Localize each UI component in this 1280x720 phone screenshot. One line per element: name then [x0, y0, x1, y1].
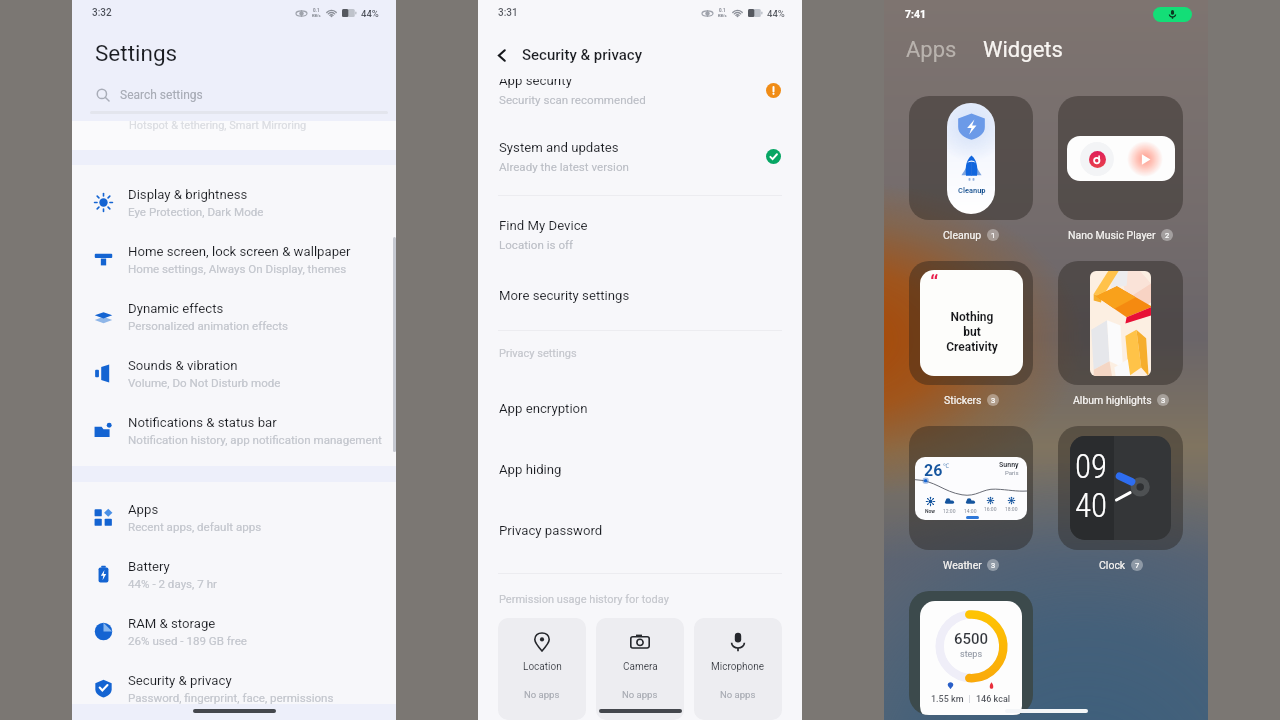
staticText: App hiding [499, 462, 562, 477]
button[interactable]: Search settings [96, 88, 396, 102]
staticText: Sounds & vibration [128, 358, 238, 373]
staticText: 2 [1165, 231, 1170, 240]
staticText: “ [930, 271, 939, 296]
staticText: Dynamic effects [128, 301, 224, 316]
button[interactable]: Microphone [694, 618, 782, 720]
button[interactable]: “ [909, 261, 1033, 385]
staticText: 3:31 [498, 7, 518, 19]
button[interactable]: Find My Device [478, 204, 802, 265]
staticText: Volume, Do Not Disturb mode [128, 376, 281, 390]
staticText: Privacy settings [499, 347, 577, 360]
staticText: Microphone [711, 661, 765, 673]
button[interactable]: Dynamic effects [72, 288, 396, 345]
staticText: 3 [991, 396, 996, 405]
staticText: 0.1 [313, 8, 320, 13]
staticText: Security & privacy [522, 46, 642, 64]
staticText: 44% - 2 days, 7 hr [128, 577, 217, 591]
staticText: Privacy password [499, 523, 603, 538]
button[interactable]: Privacy password [478, 500, 802, 561]
staticText: Security scan recommended [499, 93, 646, 107]
staticText: RAM & storage [128, 616, 216, 631]
staticText: 3 [1161, 396, 1166, 405]
button[interactable]: Battery [72, 546, 396, 603]
staticText: Already the latest version [499, 160, 629, 174]
button[interactable]: Apps [906, 37, 957, 63]
staticText: KB/s [718, 13, 727, 18]
button[interactable]: Widgets [983, 37, 1063, 63]
staticText: Camera [623, 661, 658, 673]
staticText: | [964, 694, 976, 705]
staticText: 44% [767, 8, 785, 19]
staticText: 1.55 km [931, 694, 964, 705]
staticText: Notification history, app notification m… [128, 433, 382, 447]
staticText: Cleanup [943, 229, 982, 241]
staticText: 146 kcal [976, 694, 1011, 705]
staticText: Search settings [120, 88, 203, 102]
staticText: Notifications & status bar [128, 415, 277, 430]
staticText: Home settings, Always On Display, themes [128, 262, 347, 276]
staticText: Nothing but Creativity [946, 310, 998, 354]
staticText: No apps [720, 689, 756, 700]
staticText: steps [960, 649, 983, 660]
staticText: Battery [128, 559, 170, 574]
staticText: More security settings [499, 288, 630, 303]
button[interactable]: Back [478, 38, 802, 72]
button[interactable]: RAM & storage [72, 603, 396, 660]
staticText: 16:00 [984, 506, 997, 512]
button[interactable]: Display & brightness [72, 174, 396, 231]
staticText: KB/s [312, 13, 321, 18]
staticText: Album highlights [1073, 394, 1152, 406]
staticText: Location [523, 661, 562, 673]
button[interactable] [1058, 261, 1183, 385]
staticText: Personalized animation effects [128, 319, 289, 333]
staticText: Recent apps, default apps [128, 520, 262, 534]
staticText: Settings [95, 40, 178, 66]
staticText: 1 [991, 231, 996, 240]
button[interactable] [1058, 96, 1183, 220]
staticText: Nano Music Player [1068, 229, 1156, 241]
staticText: Sunny [999, 461, 1019, 469]
staticText: 3 [991, 561, 996, 570]
button[interactable]: Camera [596, 618, 684, 720]
staticText: Stickers [944, 394, 982, 406]
button[interactable]: Cleanup [909, 96, 1033, 220]
other: Back [495, 49, 508, 62]
staticText: 7:41 [905, 8, 927, 20]
staticText: 26 [924, 461, 943, 480]
button[interactable]: Sounds & vibration [72, 345, 396, 402]
staticText: Display & brightness [128, 187, 248, 202]
button[interactable]: 09 [1058, 426, 1183, 550]
staticText: App encryption [499, 401, 588, 416]
button[interactable]: Security & privacy [72, 660, 396, 717]
staticText: Find My Device [499, 218, 588, 233]
staticText: No apps [622, 689, 658, 700]
button[interactable]: Home screen, lock screen & wallpaper [72, 231, 396, 288]
staticText: Location is off [499, 238, 574, 252]
staticText: 7 [1135, 561, 1140, 570]
staticText: Permission usage history for today [499, 593, 669, 606]
staticText: 6500 [954, 630, 989, 648]
staticText: Eye Protection, Dark Mode [128, 205, 264, 219]
button[interactable]: Apps [72, 489, 396, 546]
staticText: Hotspot & tethering, Smart Mirroring [129, 119, 307, 132]
staticText: Home screen, lock screen & wallpaper [128, 244, 351, 259]
other: Microphone in use [1153, 7, 1192, 22]
staticText: 0.1 [719, 8, 726, 13]
button[interactable]: Location [498, 618, 586, 720]
staticText: 40 [1075, 486, 1108, 525]
button[interactable]: More security settings [478, 265, 802, 326]
button[interactable]: 26 [909, 426, 1033, 550]
button[interactable]: System and updates [478, 126, 802, 187]
staticText: Now [925, 508, 936, 514]
staticText: No apps [524, 689, 560, 700]
button[interactable]: Notifications & status bar [72, 402, 396, 459]
button[interactable]: App security [478, 79, 802, 107]
button[interactable]: App encryption [478, 378, 802, 439]
button[interactable]: App hiding [478, 439, 802, 500]
button[interactable]: 6500 [909, 591, 1033, 715]
staticText: Cleanup [958, 186, 986, 195]
staticText: Paris [1005, 469, 1019, 476]
staticText: Clock [1099, 559, 1126, 571]
staticText: System and updates [499, 140, 619, 155]
staticText: Security & privacy [128, 673, 232, 688]
